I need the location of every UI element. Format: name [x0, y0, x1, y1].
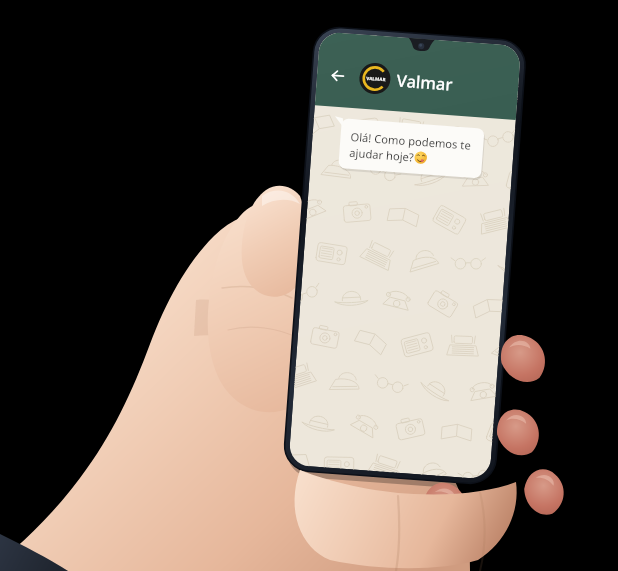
button[interactable]: Valmar WhatsApp chat on phone held in ha… [0, 0, 618, 571]
